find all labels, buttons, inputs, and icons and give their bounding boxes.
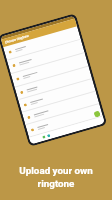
button[interactable] [22,91,99,124]
button[interactable] [15,66,92,99]
button[interactable] [25,104,103,137]
button[interactable] [7,40,84,73]
staticText: Choose ringtone [4,34,29,45]
button[interactable] [3,26,81,60]
button[interactable]: Search [47,134,51,137]
button[interactable] [18,79,95,112]
staticText: Upload your own ringtone [0,165,112,190]
button[interactable] [11,53,88,87]
button[interactable]: Add ringtone [93,110,101,118]
button[interactable]: Library [42,135,46,139]
